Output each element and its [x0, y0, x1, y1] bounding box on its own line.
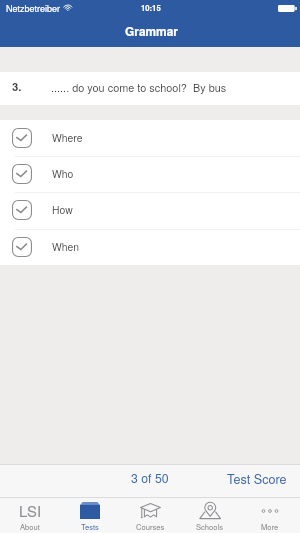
button[interactable]: About — [0, 497, 60, 533]
button[interactable]: Tests — [60, 497, 120, 533]
staticText: LSI — [19, 500, 42, 517]
staticText: Grammar — [125, 23, 178, 40]
button[interactable]: How — [0, 192, 300, 228]
staticText: Courses — [136, 521, 165, 532]
button[interactable]: Where — [0, 120, 300, 156]
button[interactable]: More — [240, 497, 300, 533]
staticText: Tests — [81, 521, 99, 532]
staticText: Where — [52, 130, 83, 145]
staticText: Netzbetreiber — [6, 2, 61, 15]
button[interactable]: Test Score — [213, 465, 300, 493]
button[interactable]: Schools — [180, 497, 240, 533]
other: Wi-Fi — [63, 4, 73, 11]
staticText: 3. — [12, 78, 22, 94]
staticText: When — [52, 239, 80, 254]
staticText: ...... do you come to school? By bus — [51, 79, 227, 95]
staticText: 10:15 — [141, 2, 161, 13]
staticText: More — [261, 521, 279, 532]
staticText: Schools — [196, 521, 224, 532]
staticText: Who — [52, 166, 74, 181]
button[interactable]: Courses — [120, 497, 180, 533]
staticText: 3 of 50 — [131, 469, 169, 487]
staticText: Test Score — [227, 470, 287, 488]
button[interactable]: When — [0, 229, 300, 265]
button[interactable]: Who — [0, 156, 300, 192]
staticText: About — [20, 521, 40, 532]
staticText: How — [52, 202, 73, 217]
